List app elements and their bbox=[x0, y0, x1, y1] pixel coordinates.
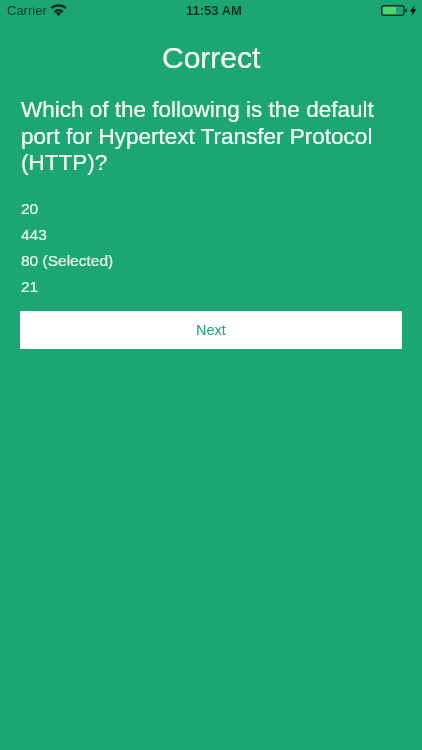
button[interactable]: 21 bbox=[0, 273, 422, 299]
staticText: 11:53 AM bbox=[186, 3, 242, 18]
staticText: 21 bbox=[21, 278, 39, 295]
other: Wi-Fi signal bbox=[51, 5, 66, 16]
staticText: Carrier bbox=[7, 3, 47, 18]
staticText: Which of the following is the default po… bbox=[21, 97, 398, 175]
button[interactable]: Next bbox=[20, 311, 402, 349]
staticText: 443 bbox=[21, 226, 47, 243]
staticText: Correct bbox=[162, 41, 261, 75]
other: Battery charging bbox=[381, 5, 417, 16]
staticText: 80 (Selected) bbox=[21, 252, 114, 269]
button[interactable]: 443 bbox=[0, 221, 422, 247]
button[interactable]: 80 (Selected) bbox=[0, 247, 422, 273]
button[interactable]: 20 bbox=[0, 195, 422, 221]
staticText: Next bbox=[196, 322, 226, 338]
staticText: 20 bbox=[21, 200, 39, 217]
